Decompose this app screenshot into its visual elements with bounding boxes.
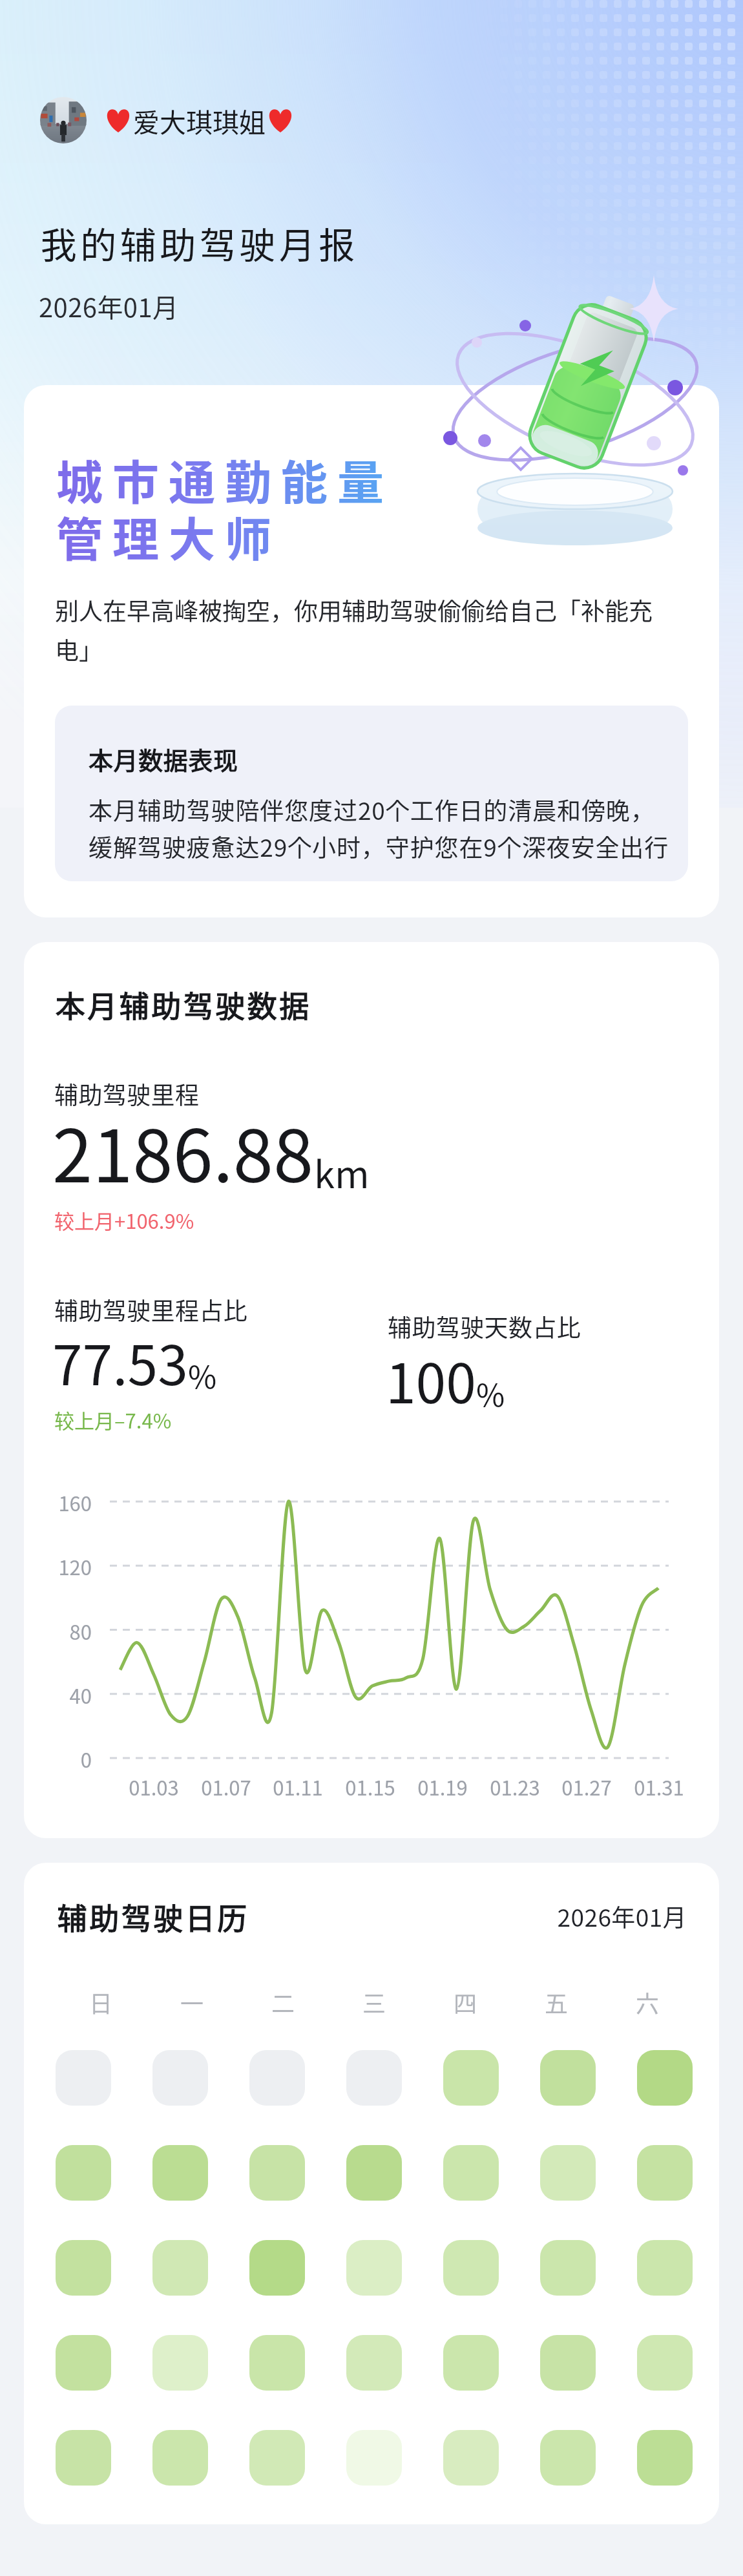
button[interactable] — [637, 2145, 693, 2201]
staticText: 六 — [636, 1985, 660, 2019]
other: Profile photo — [40, 97, 87, 143]
staticText: 五 — [545, 1985, 569, 2019]
staticText: 01.15 — [331, 1772, 409, 1801]
button[interactable] — [637, 2050, 693, 2106]
staticText: 01.07 — [187, 1772, 265, 1801]
staticText: 城市通勤能量 管理大师 — [56, 445, 394, 570]
staticText: 四 — [454, 1985, 477, 2019]
button[interactable] — [637, 2240, 693, 2296]
staticText: 三 — [362, 1985, 386, 2019]
staticText: 辅助驾驶日历 — [56, 1895, 248, 1938]
staticText: 160 — [24, 1488, 92, 1517]
button[interactable] — [56, 2335, 111, 2391]
button[interactable] — [249, 2240, 305, 2296]
button[interactable] — [443, 2335, 499, 2391]
button[interactable] — [249, 2335, 305, 2391]
button[interactable] — [249, 2145, 305, 2201]
button[interactable] — [249, 2050, 305, 2106]
button[interactable] — [346, 2240, 402, 2296]
staticText: 辅助驾驶里程 — [54, 1076, 200, 1111]
button[interactable] — [637, 2430, 693, 2486]
staticText: 80 — [24, 1617, 92, 1646]
button[interactable] — [346, 2145, 402, 2201]
button[interactable] — [443, 2145, 499, 2201]
button[interactable] — [346, 2050, 402, 2106]
staticText: 本月辅助驾驶陪伴您度过20个工作日的清晨和傍晚， 缓解驾驶疲惫达29个小时，守护… — [89, 792, 669, 863]
button[interactable] — [346, 2335, 402, 2391]
staticText: km — [314, 1145, 370, 1199]
button[interactable] — [152, 2050, 208, 2106]
button[interactable] — [540, 2335, 596, 2391]
staticText: 较上月+106.9% — [54, 1206, 194, 1235]
staticText: 01.11 — [259, 1772, 337, 1801]
staticText: 辅助驾驶里程占比 — [54, 1292, 248, 1327]
button[interactable] — [56, 2050, 111, 2106]
button[interactable] — [540, 2050, 596, 2106]
button[interactable]: 辅助驾驶日历 — [24, 1863, 719, 2524]
button[interactable] — [637, 2335, 693, 2391]
staticText: 01.31 — [620, 1772, 698, 1801]
staticText: 0 — [24, 1744, 92, 1774]
button[interactable] — [152, 2335, 208, 2391]
staticText: 100 — [386, 1341, 476, 1419]
staticText: 01.19 — [404, 1772, 481, 1801]
button[interactable] — [540, 2430, 596, 2486]
button[interactable] — [56, 2430, 111, 2486]
button[interactable] — [540, 2145, 596, 2201]
staticText: % — [476, 1370, 505, 1416]
staticText: 01.03 — [115, 1772, 193, 1801]
button[interactable] — [540, 2240, 596, 2296]
button[interactable] — [249, 2430, 305, 2486]
button[interactable] — [443, 2240, 499, 2296]
staticText: 01.23 — [476, 1772, 554, 1801]
staticText: 我的辅助驾驶月报 — [39, 216, 357, 269]
staticText: 本月辅助驾驶数据 — [54, 983, 310, 1026]
staticText: 一 — [180, 1985, 204, 2019]
staticText: 40 — [24, 1681, 92, 1710]
staticText: % — [188, 1352, 217, 1398]
staticText: 二 — [271, 1985, 295, 2019]
staticText: 辅助驾驶天数占比 — [388, 1309, 581, 1344]
button[interactable] — [152, 2240, 208, 2296]
button[interactable] — [443, 2430, 499, 2486]
staticText: 2186.88 — [52, 1098, 314, 1203]
staticText: 爱大琪琪姐 — [133, 101, 266, 140]
button[interactable]: Profile photo — [40, 97, 295, 143]
button[interactable]: 本月辅助驾驶数据 — [24, 942, 719, 1838]
staticText: 别人在早高峰被掏空，你用辅助驾驶偷偷给自己「补能充 电」 — [55, 592, 653, 667]
button[interactable]: 城市通勤能量 管理大师 — [24, 385, 719, 917]
staticText: 本月数据表现 — [89, 741, 238, 777]
staticText: 2026年01月 — [39, 288, 179, 325]
button[interactable] — [346, 2430, 402, 2486]
staticText: 120 — [24, 1552, 92, 1581]
staticText: 较上月–7.4% — [54, 1405, 172, 1434]
staticText: 2026年01月 — [470, 1899, 687, 1934]
button[interactable] — [56, 2240, 111, 2296]
button[interactable] — [56, 2145, 111, 2201]
button[interactable] — [152, 2145, 208, 2201]
button[interactable] — [443, 2050, 499, 2106]
staticText: 日 — [89, 1985, 113, 2019]
button[interactable] — [152, 2430, 208, 2486]
staticText: 77.53 — [52, 1323, 188, 1401]
staticText: 01.27 — [548, 1772, 625, 1801]
